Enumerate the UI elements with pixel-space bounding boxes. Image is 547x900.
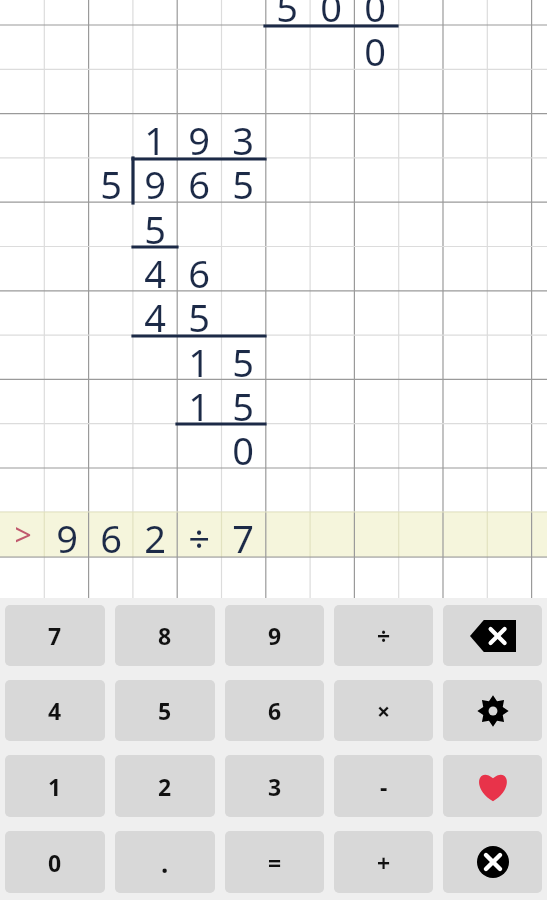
staticText: 4 bbox=[144, 247, 166, 292]
staticText: 5 bbox=[188, 291, 210, 336]
button[interactable]: 3 bbox=[225, 755, 324, 817]
staticText: ÷ bbox=[377, 620, 391, 651]
staticText: 7 bbox=[232, 512, 254, 557]
staticText: 3 bbox=[232, 114, 254, 159]
staticText: × bbox=[377, 695, 391, 726]
button[interactable]: Favorite bbox=[443, 755, 542, 817]
staticText: 9 bbox=[268, 620, 282, 651]
staticText: 4 bbox=[144, 291, 166, 336]
staticText: 1 bbox=[188, 336, 210, 381]
staticText: 5 bbox=[232, 158, 254, 203]
staticText: 2 bbox=[158, 771, 172, 802]
button[interactable]: 8 bbox=[115, 605, 215, 666]
staticText: 2 bbox=[144, 512, 166, 557]
staticText: 6 bbox=[188, 158, 210, 203]
staticText: 0 bbox=[320, 0, 342, 26]
staticText: 1 bbox=[144, 114, 166, 159]
staticText: 7 bbox=[48, 620, 62, 651]
staticText: 6 bbox=[100, 512, 122, 557]
button[interactable]: . bbox=[115, 831, 215, 893]
staticText: 6 bbox=[268, 695, 282, 726]
staticText: 5 bbox=[144, 203, 166, 248]
button[interactable]: + bbox=[334, 831, 433, 893]
button[interactable]: 4 bbox=[5, 680, 105, 741]
staticText: 1 bbox=[188, 380, 210, 425]
button[interactable]: - bbox=[334, 755, 433, 817]
staticText: 0 bbox=[364, 0, 386, 26]
button[interactable]: 1 bbox=[5, 755, 105, 817]
button[interactable]: Backspace bbox=[443, 605, 542, 666]
button[interactable]: Close bbox=[443, 831, 542, 893]
staticText: 9 bbox=[188, 114, 210, 159]
button[interactable]: 2 bbox=[115, 755, 215, 817]
staticText: 4 bbox=[48, 695, 62, 726]
staticText: 5 bbox=[158, 695, 172, 726]
staticText: 5 bbox=[100, 158, 122, 203]
staticText: = bbox=[268, 847, 282, 878]
staticText: . bbox=[161, 845, 169, 880]
staticText: 5 bbox=[276, 0, 298, 26]
button[interactable]: ÷ bbox=[334, 605, 433, 666]
staticText: 0 bbox=[48, 847, 62, 878]
staticText: + bbox=[377, 847, 391, 878]
staticText: ÷ bbox=[188, 512, 210, 557]
staticText: 5 bbox=[232, 336, 254, 381]
staticText: 1 bbox=[48, 771, 62, 802]
staticText: - bbox=[380, 771, 388, 802]
staticText: 3 bbox=[268, 771, 282, 802]
staticText: > bbox=[14, 514, 32, 555]
button[interactable]: Settings bbox=[443, 680, 542, 741]
button[interactable]: 5 bbox=[115, 680, 215, 741]
staticText: 9 bbox=[144, 158, 166, 203]
staticText: 8 bbox=[158, 620, 172, 651]
staticText: 5 bbox=[232, 380, 254, 425]
button[interactable]: 6 bbox=[225, 680, 324, 741]
staticText: 0 bbox=[364, 25, 386, 70]
staticText: 0 bbox=[232, 424, 254, 469]
button[interactable]: 0 bbox=[5, 831, 105, 893]
staticText: 9 bbox=[56, 512, 78, 557]
staticText: 6 bbox=[188, 247, 210, 292]
button[interactable]: = bbox=[225, 831, 324, 893]
button[interactable]: 9 bbox=[225, 605, 324, 666]
button[interactable]: × bbox=[334, 680, 433, 741]
button[interactable]: 7 bbox=[5, 605, 105, 666]
